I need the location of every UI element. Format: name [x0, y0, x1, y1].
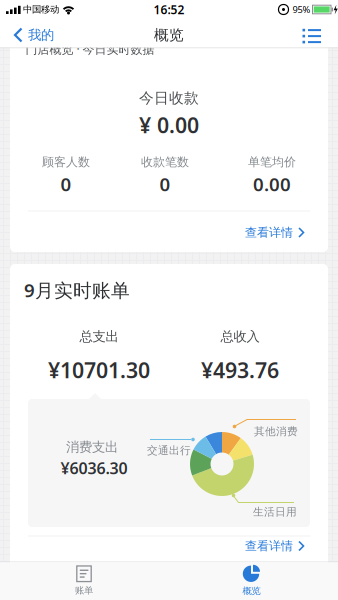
button[interactable]: 账单列表: [301, 22, 322, 48]
staticText: 单笔均价: [248, 155, 296, 169]
button[interactable]: 查看详情: [240, 537, 310, 555]
staticText: 生活日用: [253, 505, 297, 518]
staticText: 门店概览 · 今日实时数据: [25, 41, 154, 57]
staticText: 9月实时账单: [24, 278, 130, 302]
staticText: 0: [159, 172, 170, 196]
staticText: ¥ 0.00: [139, 111, 199, 139]
button[interactable]: 查看详情: [240, 223, 310, 241]
staticText: 我的: [28, 27, 54, 43]
staticText: 顾客人数: [42, 155, 90, 169]
staticText: 0: [60, 172, 71, 196]
staticText: 总收入: [220, 328, 259, 345]
button[interactable]: 账单: [24, 562, 144, 599]
staticText: 交通出行: [147, 444, 191, 457]
staticText: ¥10701.30: [48, 356, 150, 384]
staticText: 16:52: [153, 1, 184, 17]
staticText: 总支出: [79, 328, 118, 345]
staticText: 95%: [292, 3, 310, 16]
staticText: 0.00: [253, 172, 291, 196]
button[interactable]: 返回我的: [10, 22, 74, 48]
button[interactable]: 总收入: [175, 325, 305, 381]
staticText: 概览: [154, 26, 184, 44]
staticText: 概览: [242, 585, 260, 597]
staticText: 查看详情: [245, 539, 293, 553]
staticText: 收款笔数: [141, 155, 189, 169]
staticText: 其他消费: [254, 425, 298, 438]
button[interactable]: 概览: [191, 562, 311, 599]
staticText: 中国移动: [23, 4, 59, 15]
staticText: ¥6036.30: [60, 457, 127, 479]
staticText: ¥493.76: [201, 356, 279, 384]
button[interactable]: 总支出: [34, 325, 164, 381]
staticText: 查看详情: [245, 225, 293, 240]
staticText: 今日收款: [139, 89, 199, 107]
staticText: 消费支出: [66, 439, 118, 455]
staticText: 账单: [75, 585, 93, 596]
